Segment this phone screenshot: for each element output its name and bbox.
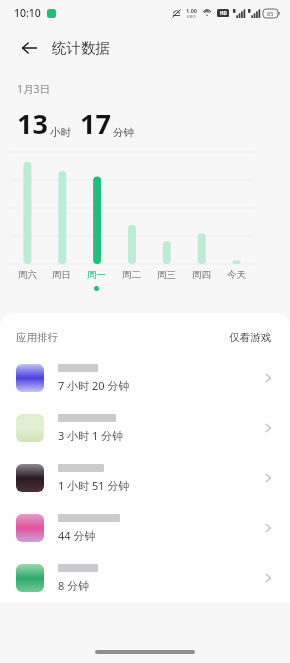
staticText: 7 小时 20 分钟 <box>58 378 130 393</box>
staticText: 今天 <box>227 269 246 281</box>
staticText: KB/S <box>187 14 196 19</box>
button[interactable]: 今天 <box>219 269 254 286</box>
staticText: 小时 <box>50 126 71 139</box>
button[interactable]: 44 分钟 <box>0 503 290 553</box>
staticText: 1月3日 <box>17 82 51 96</box>
staticText: 10:10 <box>14 6 41 20</box>
button[interactable]: 3 小时 1 分钟 <box>0 403 290 453</box>
button[interactable]: 7 小时 20 分钟 <box>0 353 290 403</box>
staticText: 8 分钟 <box>58 578 90 593</box>
staticText: 17 <box>80 105 111 142</box>
staticText: 仅看游戏 <box>229 331 271 344</box>
staticText: 周一 <box>87 269 106 281</box>
button[interactable]: 周三 <box>149 269 184 286</box>
staticText: 周四 <box>192 269 211 281</box>
button[interactable]: 8 分钟 <box>0 553 290 603</box>
staticText: 1 小时 51 分钟 <box>58 478 130 493</box>
staticText: 13 <box>17 105 48 142</box>
button[interactable]: 周日 <box>44 269 79 286</box>
button[interactable]: 周一 <box>79 269 114 291</box>
staticText: 44 分钟 <box>58 528 96 543</box>
staticText: 周日 <box>52 269 71 281</box>
staticText: 1.00 <box>186 7 197 14</box>
staticText: 应用排行 <box>16 331 58 344</box>
staticText: HD <box>220 10 227 16</box>
staticText: 周三 <box>157 269 176 281</box>
staticText: 85 <box>267 10 274 17</box>
staticText: 3 小时 1 分钟 <box>58 428 124 443</box>
button[interactable]: 仅看游戏 <box>226 328 274 347</box>
staticText: 统计数据 <box>52 39 110 57</box>
button[interactable]: 周六 <box>10 269 44 286</box>
button[interactable]: Back <box>14 33 44 63</box>
button[interactable]: 周二 <box>114 269 149 286</box>
staticText: 周二 <box>122 269 141 281</box>
button[interactable]: 周四 <box>184 269 219 286</box>
staticText: 周六 <box>18 269 37 281</box>
staticText: 分钟 <box>113 126 134 139</box>
button[interactable]: 1 小时 51 分钟 <box>0 453 290 503</box>
